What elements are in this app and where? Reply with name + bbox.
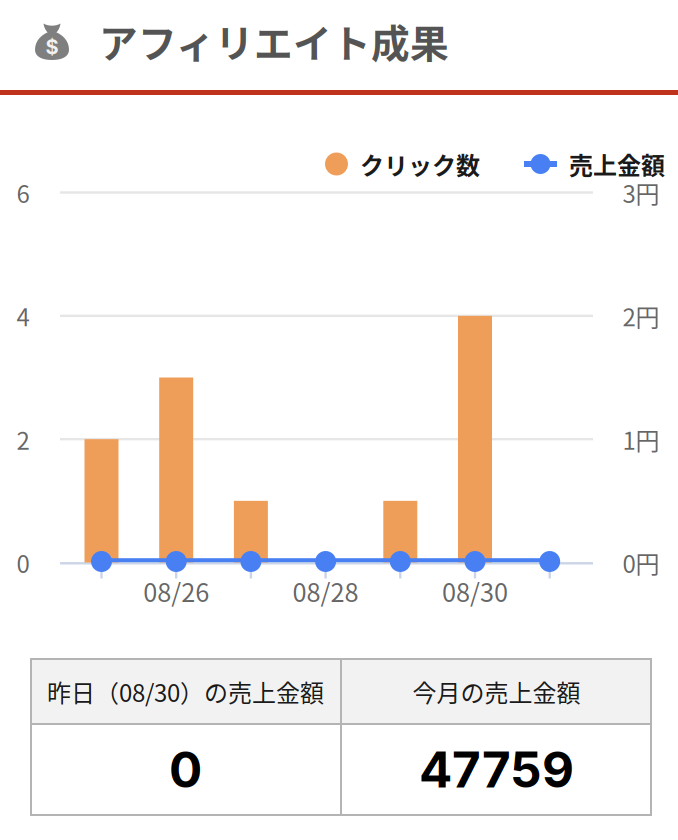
staticText: 昨日（08/30）の売上金額 (47, 674, 324, 709)
staticText: 08/30 (442, 573, 508, 609)
staticText: 08/26 (143, 573, 209, 609)
button[interactable]: クリック数 (325, 147, 480, 181)
staticText: 6 (16, 175, 29, 210)
staticText: 3円 (622, 175, 659, 210)
staticText: 0 (169, 740, 202, 799)
staticText: 2円 (622, 298, 659, 333)
button[interactable]: 売上金額 (524, 147, 665, 181)
staticText: 4 (16, 298, 29, 333)
staticText: アフィリエイト成果 (99, 13, 449, 69)
staticText: $ (45, 35, 58, 59)
staticText: 0 (16, 545, 29, 580)
staticText: 1円 (622, 422, 659, 457)
staticText: 今月の売上金額 (412, 674, 580, 709)
staticText: 47759 (419, 740, 574, 799)
staticText: クリック数 (360, 147, 480, 181)
staticText: 2 (16, 422, 29, 457)
staticText: 0円 (622, 545, 659, 580)
staticText: 売上金額 (569, 147, 665, 181)
staticText: 08/28 (293, 573, 359, 609)
